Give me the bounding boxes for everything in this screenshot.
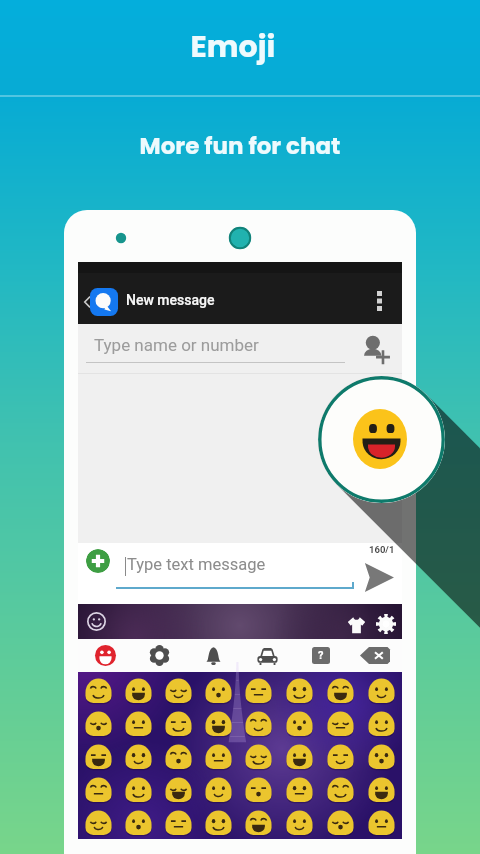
button[interactable]: Emoji: [118, 674, 158, 707]
button[interactable]: Emoji: [279, 707, 320, 740]
button[interactable]: Emoji: [361, 806, 402, 839]
button[interactable]: Add contact: [364, 336, 393, 365]
button[interactable]: Settings: [132, 639, 186, 672]
button[interactable]: Emoji: [238, 773, 279, 806]
button[interactable]: Emoji: [279, 740, 320, 773]
button[interactable]: Emoji: [118, 707, 158, 740]
button[interactable]: Emoji: [320, 674, 361, 707]
button[interactable]: Emoji: [279, 773, 320, 806]
button[interactable]: Emoji: [361, 674, 402, 707]
button[interactable]: More options: [368, 285, 390, 317]
button[interactable]: Emoji: [238, 806, 279, 839]
button[interactable]: Send: [364, 563, 394, 592]
staticText: More fun for chat: [0, 130, 480, 162]
button[interactable]: Emoji: [198, 806, 238, 839]
button[interactable]: Emoji: [158, 740, 198, 773]
staticText: Type text message: [127, 555, 266, 574]
button[interactable]: Emoji: [279, 674, 320, 707]
button[interactable]: Emoji: [320, 740, 361, 773]
button[interactable]: Travel: [240, 639, 294, 672]
button[interactable]: Emoji: [238, 740, 279, 773]
button[interactable]: Emoji: [238, 674, 279, 707]
button[interactable]: Emoji keyboard: [318, 376, 445, 503]
button[interactable]: Back: [81, 293, 92, 311]
button[interactable]: Emoji: [361, 740, 402, 773]
button[interactable]: Emoji: [320, 806, 361, 839]
button[interactable]: Emoji: [78, 674, 118, 707]
button[interactable]: Backspace: [348, 639, 402, 672]
button[interactable]: Emoji: [158, 674, 198, 707]
button[interactable]: Emoji: [158, 707, 198, 740]
button[interactable]: Emoji: [198, 773, 238, 806]
button[interactable]: [78, 324, 402, 543]
button[interactable]: Emoji: [78, 806, 118, 839]
button[interactable]: [78, 262, 402, 324]
button[interactable]: Attach: [86, 549, 110, 573]
button[interactable]: Emoji: [118, 806, 158, 839]
button[interactable]: Help: [294, 639, 348, 672]
button[interactable]: Notifications: [186, 639, 240, 672]
button[interactable]: Emoji: [198, 707, 238, 740]
button[interactable]: Emoji: [361, 773, 402, 806]
button[interactable]: Emoji: [118, 773, 158, 806]
button[interactable]: Emoji: [279, 806, 320, 839]
button[interactable]: Emoji: [320, 773, 361, 806]
button[interactable]: Emoji: [158, 806, 198, 839]
button[interactable]: Emoji: [361, 707, 402, 740]
button[interactable]: Themes: [347, 615, 366, 634]
staticText: Type name or number: [94, 335, 259, 355]
button[interactable]: Emoji: [87, 612, 106, 631]
staticText: New message: [126, 292, 215, 308]
button[interactable]: Settings: [376, 614, 396, 634]
staticText: Emoji: [0, 26, 473, 68]
button[interactable]: Emoji: [320, 707, 361, 740]
button[interactable]: Emoji: [78, 707, 118, 740]
button[interactable]: Emoji: [78, 740, 118, 773]
button[interactable]: Emoji: [78, 773, 118, 806]
button[interactable]: Emoji: [198, 674, 238, 707]
button[interactable]: Emoji: [238, 707, 279, 740]
button[interactable]: Smileys: [78, 639, 132, 672]
staticText: ?: [318, 649, 324, 662]
button[interactable]: Emoji: [198, 740, 238, 773]
staticText: 160/1: [369, 544, 395, 555]
button[interactable]: Emoji: [118, 740, 158, 773]
button[interactable]: Emoji: [158, 773, 198, 806]
